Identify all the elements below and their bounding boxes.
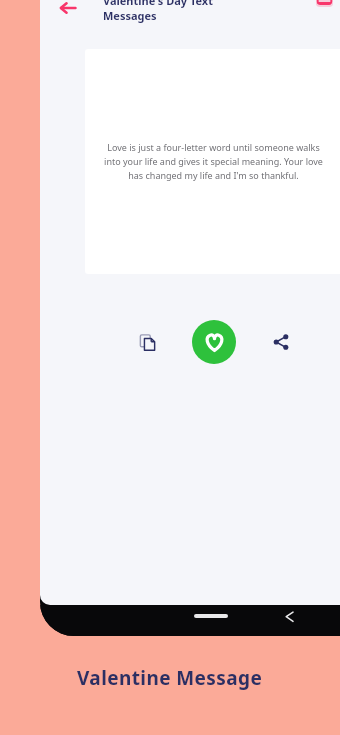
button[interactable]: Love is just a four-letter word until so… [85, 49, 340, 274]
button[interactable]: Share [263, 324, 299, 360]
staticText: Messages [103, 8, 157, 23]
staticText: Valentine's Day Text [103, 0, 213, 8]
staticText: Love is just a four-letter word until so… [101, 141, 326, 182]
button[interactable]: Copy [129, 324, 165, 360]
staticText: Valentine Message [77, 665, 263, 691]
button[interactable]: Messages [308, 0, 340, 14]
button[interactable]: Back [48, 0, 88, 28]
button[interactable]: Favourite [192, 320, 236, 364]
